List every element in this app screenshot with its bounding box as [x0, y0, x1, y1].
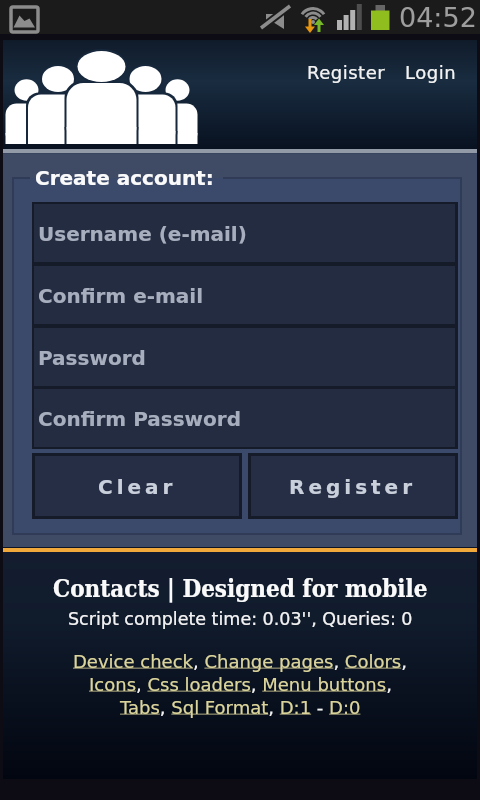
staticText: Confirm e-mail [38, 284, 204, 307]
button[interactable]: Icons, Css loaders, Menu buttons, [0, 673, 480, 695]
button[interactable]: Password [34, 328, 455, 386]
staticText: Password [38, 346, 146, 369]
button[interactable]: Tabs, Sql Format, D:1 - D:0 [0, 696, 480, 718]
button[interactable]: Register [303, 58, 390, 87]
staticText: Username (e-mail) [38, 222, 247, 245]
staticText: Contacts | Designed for mobile [53, 574, 428, 602]
staticText: Tabs, Sql Format, D:1 - D:0 [120, 697, 361, 718]
staticText: Device check, Change pages, Colors, [73, 651, 407, 672]
staticText: Icons, Css loaders, Menu buttons, [89, 674, 392, 695]
button[interactable]: Confirm Password [34, 389, 455, 447]
staticText: Clear [98, 475, 177, 498]
staticText: Confirm Password [38, 407, 241, 430]
staticText: Register [289, 475, 417, 498]
button[interactable]: Device check, Change pages, Colors, [0, 650, 480, 672]
button[interactable]: Register [251, 456, 455, 516]
staticText: Create account: [35, 166, 214, 189]
button[interactable]: Login [401, 58, 461, 87]
button[interactable]: Clear [35, 456, 239, 516]
staticText: Script complete time: 0.03'', Queries: 0 [68, 609, 413, 629]
button[interactable]: Confirm e-mail [34, 266, 455, 324]
staticText: 04:52 [399, 2, 477, 33]
button[interactable]: Username (e-mail) [34, 204, 455, 262]
